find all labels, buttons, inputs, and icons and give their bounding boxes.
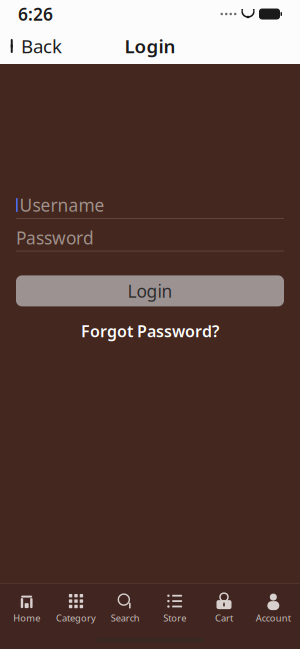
button[interactable]: Forgot Password?: [71, 317, 229, 345]
staticText: Forgot Password?: [81, 320, 219, 342]
staticText: Back: [21, 34, 62, 58]
button[interactable]: Login: [16, 275, 284, 306]
button[interactable]: Search: [101, 589, 150, 628]
staticText: Search: [111, 612, 140, 624]
staticText: Home: [13, 612, 40, 624]
button[interactable]: Home: [2, 589, 51, 628]
button[interactable]: Back: [0, 28, 62, 64]
staticText: Store: [163, 612, 186, 624]
staticText: Account: [256, 612, 291, 624]
button[interactable]: Cart: [199, 589, 249, 628]
staticText: Login: [127, 279, 172, 302]
button[interactable]: Store: [150, 589, 199, 628]
staticText: 6:26: [18, 2, 53, 25]
button[interactable]: Category: [51, 589, 101, 628]
staticText: Login: [124, 34, 175, 58]
staticText: Password: [16, 226, 94, 249]
staticText: Category: [56, 612, 96, 624]
staticText: Cart: [215, 612, 233, 624]
button[interactable]: Account: [249, 589, 298, 628]
staticText: Username: [20, 193, 105, 216]
